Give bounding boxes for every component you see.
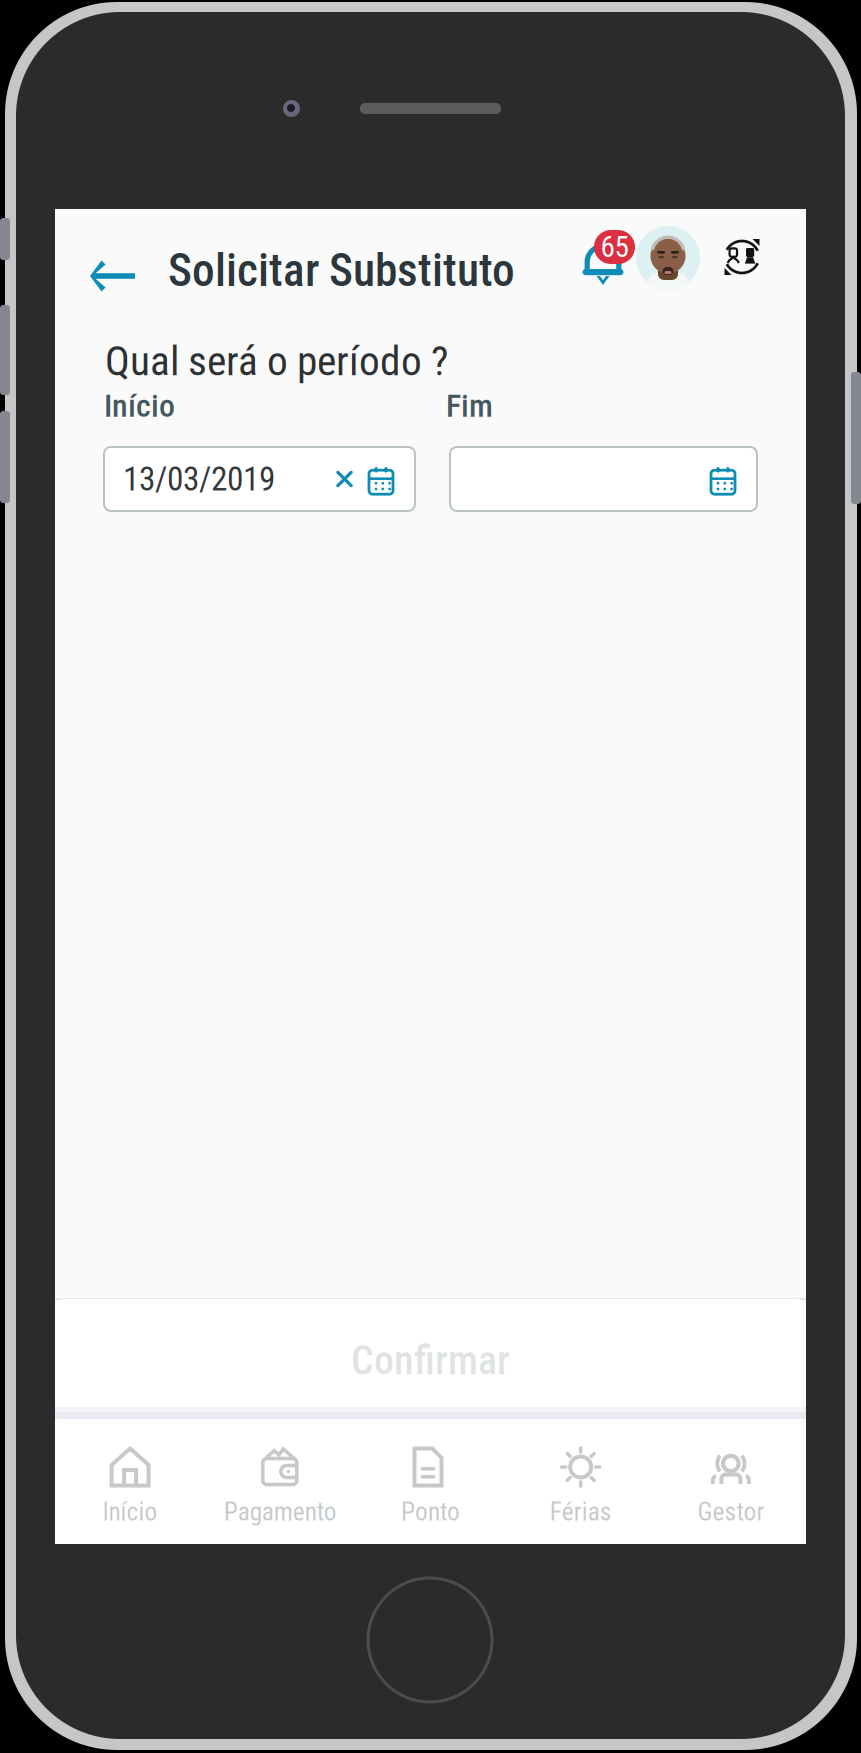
button[interactable]: Trocar substituto: [719, 234, 765, 280]
staticText: Fim: [446, 387, 493, 424]
button[interactable]: Notificações: [582, 236, 624, 284]
staticText: Início: [103, 1497, 158, 1527]
button[interactable]: Ponto: [355, 1422, 506, 1544]
staticText: Qual será o período ?: [105, 337, 448, 385]
staticText: Solicitar Substituto: [168, 244, 515, 297]
button[interactable]: Férias: [506, 1422, 656, 1544]
staticText: 65: [600, 230, 628, 264]
staticText: Pagamento: [224, 1497, 337, 1527]
button[interactable]: Solicitar Substituto: [168, 238, 515, 303]
button[interactable]: Limpar data de início: [333, 467, 356, 490]
button[interactable]: Início: [55, 1422, 205, 1544]
button[interactable]: Gestor: [656, 1422, 806, 1544]
staticText: Início: [104, 387, 175, 424]
staticText: Ponto: [401, 1497, 460, 1527]
button[interactable]: Perfil: [636, 226, 700, 290]
button[interactable]: Confirmar: [55, 1299, 806, 1422]
button[interactable]: Voltar: [76, 244, 148, 308]
staticText: Confirmar: [351, 1337, 510, 1384]
staticText: 13/03/2019: [123, 459, 275, 499]
staticText: Férias: [550, 1497, 612, 1527]
button[interactable]: Pagamento: [205, 1422, 355, 1544]
staticText: Gestor: [697, 1497, 764, 1527]
